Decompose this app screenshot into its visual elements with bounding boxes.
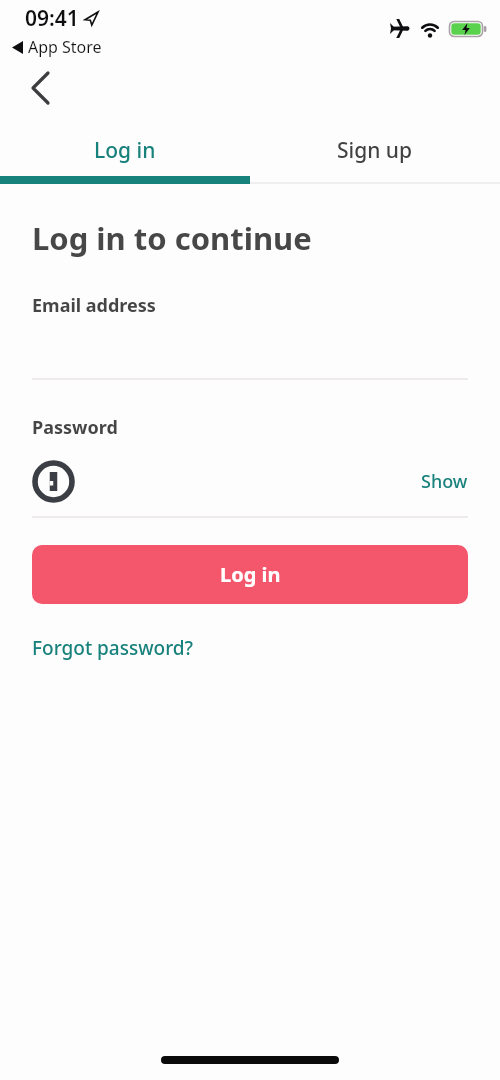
button[interactable]: Sign up: [250, 120, 500, 176]
staticText: Log in: [94, 136, 156, 165]
button[interactable]: Log in: [32, 545, 468, 604]
staticText: Password: [32, 415, 118, 440]
button[interactable]: Log in: [0, 120, 250, 176]
button[interactable]: [32, 460, 75, 503]
staticText: App Store: [28, 36, 102, 58]
staticText: Log in: [220, 561, 281, 588]
button[interactable]: Show: [421, 469, 468, 494]
staticText: Show: [421, 469, 468, 494]
staticText: Log in to continue: [32, 217, 312, 259]
button[interactable]: [27, 72, 51, 104]
staticText: Forgot password?: [32, 635, 194, 661]
staticText: Email address: [32, 293, 156, 318]
staticText: Sign up: [337, 136, 413, 165]
staticText: 09:41: [25, 4, 79, 33]
button[interactable]: Forgot password?: [32, 635, 194, 661]
